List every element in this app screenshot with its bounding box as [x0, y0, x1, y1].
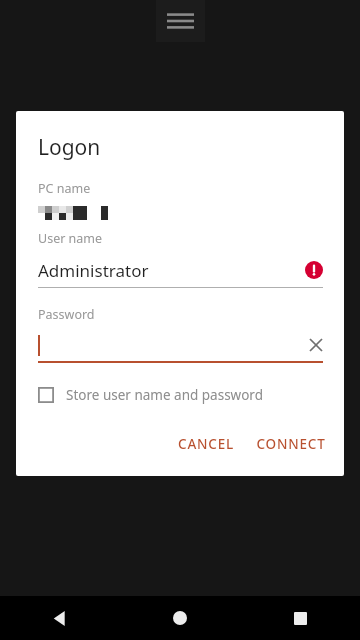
button[interactable]: Administrator [16, 253, 344, 287]
staticText: Store user name and password [66, 386, 263, 404]
staticText: CONNECT [256, 435, 326, 453]
staticText: Administrator [38, 259, 149, 282]
other: Error [305, 261, 323, 279]
staticText: Logon [38, 133, 101, 162]
button[interactable]: Clear password [306, 335, 326, 355]
staticText: CANCEL [178, 435, 234, 453]
button[interactable]: Back [0, 596, 120, 640]
staticText: Password [38, 306, 95, 323]
button[interactable]: CONNECT [248, 427, 334, 461]
button[interactable]: Menu [156, 0, 205, 42]
staticText: User name [38, 230, 103, 247]
button[interactable]: Store user name and password [38, 380, 263, 410]
button[interactable]: CANCEL [170, 427, 242, 461]
button[interactable]: Recent apps [240, 596, 360, 640]
staticText: PC name [38, 180, 91, 197]
button[interactable]: Clear password [16, 329, 344, 361]
button[interactable]: Home [120, 596, 240, 640]
